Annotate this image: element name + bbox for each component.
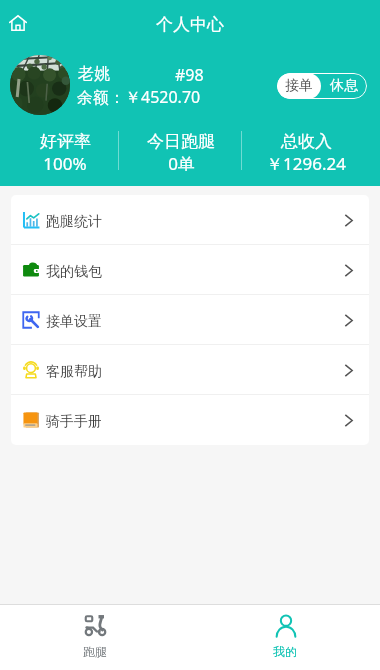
staticText: 余额：￥4520.70 [77,86,201,108]
staticText: 接单设置 [46,313,102,331]
staticText: 休息 [330,77,358,95]
button[interactable]: 客服帮助 [11,345,369,395]
staticText: 总收入 [281,131,332,152]
staticText: 我的钱包 [46,263,102,281]
button[interactable]: 跑腿 [0,605,190,670]
staticText: 跑腿统计 [46,213,102,231]
staticText: 跑腿 [83,644,107,659]
staticText: 我的 [273,644,297,659]
staticText: ￥1296.24 [266,152,346,171]
button[interactable]: 总收入 [241,131,371,171]
button[interactable]: 接单设置 [11,295,369,345]
staticText: 好评率 [40,131,91,152]
staticText: #98 [175,64,204,86]
staticText: 100% [43,152,87,171]
button[interactable]: Home [0,5,35,40]
staticText: 今日跑腿 [147,131,215,152]
staticText: 老姚 [78,64,110,84]
staticText: 客服帮助 [46,363,102,381]
button[interactable]: 跑腿统计 [11,195,369,245]
staticText: 骑手手册 [46,413,102,431]
button[interactable]: 今日跑腿 [116,131,246,171]
button[interactable]: 好评率 [0,131,130,171]
staticText: 个人中心 [156,14,224,35]
button[interactable]: 我的钱包 [11,245,369,295]
button[interactable]: 接单 [277,73,367,99]
staticText: 0单 [168,152,195,171]
button[interactable]: 我的 [190,605,380,670]
staticText: 接单 [285,77,313,95]
button[interactable]: 骑手手册 [11,395,369,445]
